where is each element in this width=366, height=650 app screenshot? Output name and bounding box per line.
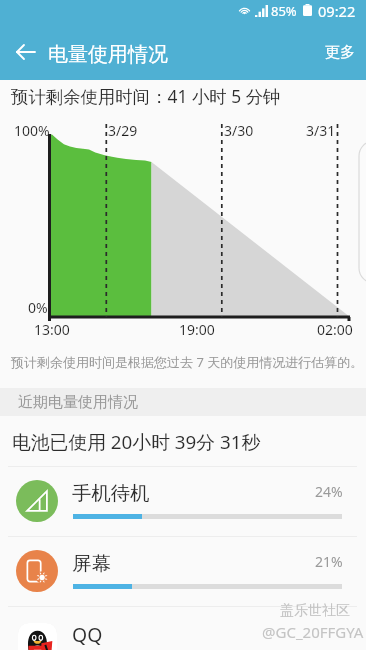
staticText: 24%: [315, 482, 343, 501]
button[interactable]: 屏幕: [0, 536, 366, 606]
staticText: 85%: [271, 2, 297, 20]
button[interactable]: QQ: [0, 606, 366, 650]
staticText: 13:00: [34, 320, 70, 339]
staticText: 3/29: [108, 121, 138, 140]
staticText: QQ: [72, 621, 103, 647]
staticText: 电池已使用 20小时 39分 31秒: [12, 429, 261, 455]
staticText: 手机待机: [72, 481, 150, 505]
staticText: 盖乐世社区: [280, 602, 350, 620]
staticText: 预计剩余使用时间：41 小时 5 分钟: [11, 84, 281, 108]
staticText: 屏幕: [72, 551, 111, 575]
button[interactable]: 手机待机: [0, 466, 366, 536]
staticText: 100%: [14, 121, 50, 140]
staticText: 0%: [28, 298, 48, 317]
staticText: 21%: [315, 552, 343, 571]
staticText: 预计剩余使用时间是根据您过去 7 天的使用情况进行估算的。: [11, 353, 364, 371]
staticText: @GC_20FFGYA: [262, 622, 364, 642]
staticText: 02:00: [317, 320, 353, 339]
button[interactable]: 更多: [314, 24, 366, 80]
staticText: 3/31: [306, 121, 336, 140]
staticText: 电量使用情况: [48, 42, 168, 67]
staticText: 19:00: [179, 320, 215, 339]
button[interactable]: Back: [4, 24, 46, 80]
staticText: 09:22: [318, 1, 356, 21]
staticText: 近期电量使用情况: [18, 393, 138, 412]
staticText: 更多: [325, 43, 355, 62]
staticText: 3/30: [224, 121, 254, 140]
